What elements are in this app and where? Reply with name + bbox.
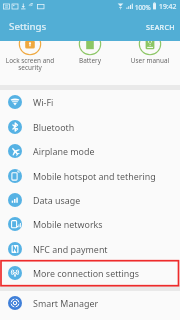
staticText: Mobile hotspot and tethering <box>33 170 156 182</box>
button[interactable]: Data usage <box>0 188 180 212</box>
button[interactable]: Mobile networks <box>0 212 180 236</box>
staticText: SEARCH <box>146 22 175 32</box>
staticText: Lock screen and security <box>0 56 60 72</box>
staticText: Settings <box>9 20 47 33</box>
staticText: Smart Manager <box>33 297 99 309</box>
button[interactable]: User manual <box>120 0 180 85</box>
button[interactable]: Battery <box>60 0 120 85</box>
staticText: 19:42 <box>159 2 177 11</box>
staticText: More connection settings <box>33 267 140 279</box>
button[interactable]: More connection settings <box>0 261 180 285</box>
button[interactable]: Bluetooth <box>0 115 180 139</box>
staticText: Data usage <box>33 194 81 206</box>
button[interactable]: SEARCH <box>138 20 180 36</box>
button[interactable]: Airplane mode <box>0 139 180 163</box>
button[interactable]: Wi-Fi <box>0 90 180 114</box>
staticText: Wi-Fi <box>33 96 54 108</box>
staticText: Bluetooth <box>33 121 75 133</box>
button[interactable]: NFC and payment <box>0 237 180 261</box>
staticText: Mobile networks <box>33 218 103 230</box>
staticText: User manual <box>120 56 180 65</box>
staticText: Battery <box>60 56 120 65</box>
button[interactable]: Mobile hotspot and tethering <box>0 164 180 188</box>
button[interactable]: Lock screen and security <box>0 0 60 85</box>
staticText: 100% <box>135 3 151 11</box>
button[interactable]: Smart Manager <box>0 291 180 315</box>
staticText: NFC and payment <box>33 243 108 255</box>
staticText: Airplane mode <box>33 145 95 157</box>
